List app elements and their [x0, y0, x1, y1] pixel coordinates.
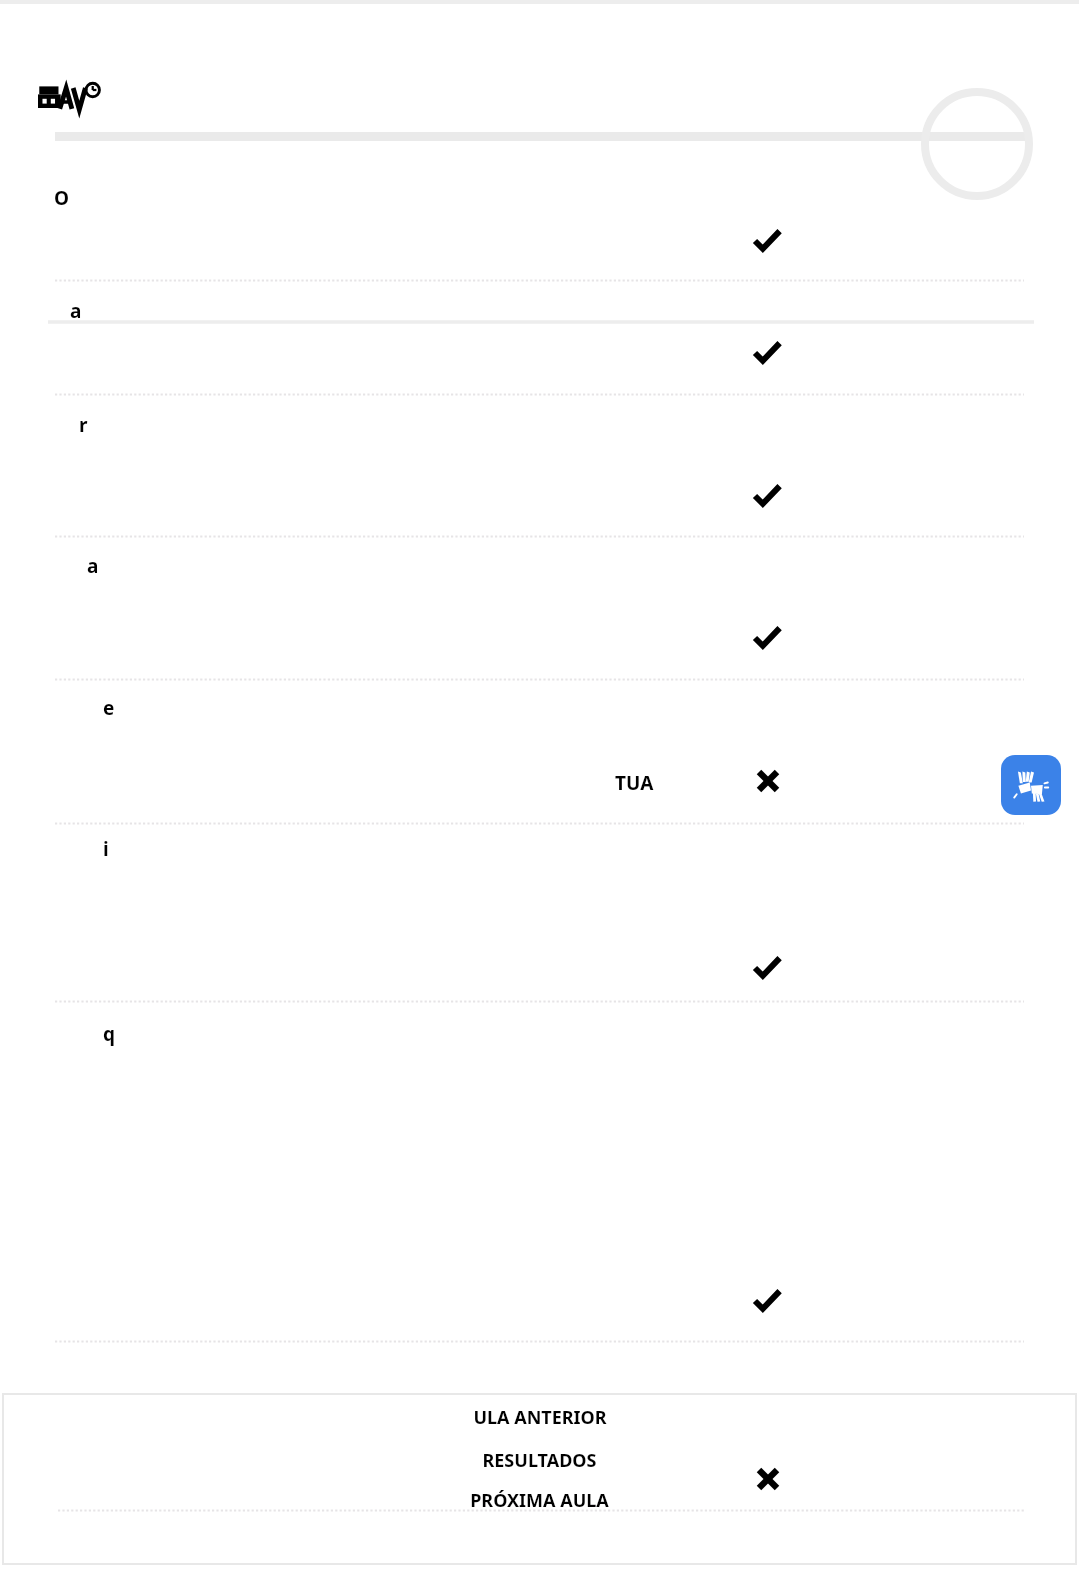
staticText: PRÓXIMA AULA [470, 1488, 609, 1513]
button[interactable]: Concluído [752, 953, 782, 983]
staticText: ULA ANTERIOR [473, 1405, 607, 1430]
staticText: a [87, 553, 99, 579]
staticText: q [103, 1021, 116, 1047]
staticText: RESULTADOS [482, 1448, 597, 1473]
staticText: TUA [615, 770, 654, 796]
button[interactable]: Concluído [752, 338, 782, 368]
button[interactable]: TUA [611, 768, 658, 798]
button[interactable]: Fechar [753, 1464, 783, 1494]
button[interactable]: Concluído [752, 226, 782, 256]
other: Progresso [921, 88, 1033, 200]
button[interactable]: q [99, 1019, 120, 1049]
button[interactable]: r [75, 410, 92, 440]
button[interactable]: RESULTADOS [3, 1440, 1076, 1480]
button[interactable]: a [66, 296, 86, 326]
button[interactable]: e [99, 693, 119, 723]
staticText: e [103, 695, 115, 721]
staticText: r [79, 412, 88, 438]
button[interactable]: ULA ANTERIOR [3, 1394, 1076, 1440]
other: Logo [38, 80, 102, 120]
button[interactable]: i [99, 834, 113, 864]
staticText: i [103, 836, 109, 862]
button[interactable]: Incorreto [753, 766, 783, 796]
button[interactable]: Concluído [752, 481, 782, 511]
button[interactable]: Concluído [752, 623, 782, 653]
button[interactable]: PRÓXIMA AULA [3, 1480, 1076, 1520]
button[interactable]: a [83, 551, 103, 581]
button[interactable]: Concluído [752, 1286, 782, 1316]
staticText: O [54, 185, 70, 211]
staticText: a [70, 298, 82, 324]
button[interactable]: Acessibilidade em Libras [1001, 755, 1061, 815]
button[interactable]: O [50, 183, 74, 213]
